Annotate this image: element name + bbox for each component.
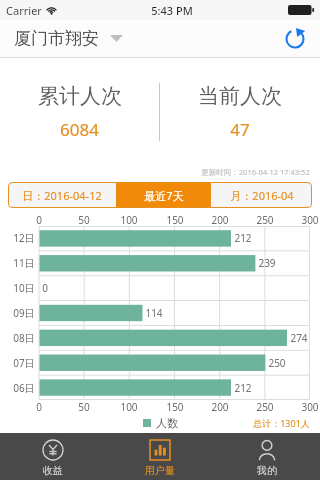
button[interactable]: 我的 (213, 433, 320, 480)
staticText: 47 (230, 118, 250, 141)
staticText: 09日 (13, 306, 35, 320)
staticText: 人数 (156, 416, 178, 430)
staticText: 150 (166, 400, 184, 413)
staticText: 总计：1301人 (253, 417, 310, 429)
button[interactable]: 最近7天 (117, 182, 210, 208)
staticText: 200 (211, 213, 229, 226)
staticText: 274 (290, 331, 308, 345)
staticText: 我的 (257, 464, 277, 477)
staticText: 收益 (43, 464, 63, 477)
button[interactable]: Refresh (280, 24, 310, 54)
staticText: 200 (211, 400, 229, 413)
staticText: 0 (42, 281, 48, 295)
staticText: 最近7天 (144, 188, 184, 203)
staticText: 6084 (60, 118, 99, 141)
staticText: 累计人次 (38, 83, 122, 109)
staticText: 06日 (13, 381, 35, 395)
staticText: 10日 (13, 281, 35, 295)
staticText: 07日 (13, 356, 35, 370)
staticText: 114 (145, 306, 163, 320)
staticText: 当前人次 (198, 83, 282, 109)
staticText: 用户量 (145, 464, 175, 477)
staticText: 250 (268, 356, 286, 370)
staticText: 50 (78, 213, 90, 226)
staticText: 100 (120, 213, 138, 226)
button[interactable]: 月：2016-04 (211, 182, 312, 208)
staticText: 11日 (13, 256, 35, 270)
staticText: 250 (256, 400, 274, 413)
staticText: 月：2016-04 (230, 188, 294, 203)
staticText: 5:43 PM (151, 3, 193, 18)
staticText: 更新时间：2016-04-12 17:43:52 (201, 167, 310, 177)
staticText: 厦门市翔安 (14, 28, 99, 49)
staticText: 日：2016-04-12 (22, 188, 102, 203)
staticText: 239 (258, 256, 276, 270)
staticText: 300 (301, 213, 319, 226)
staticText: 212 (234, 231, 252, 245)
button[interactable]: 日：2016-04-12 (8, 182, 116, 208)
button[interactable]: 用户量 (106, 433, 213, 480)
staticText: 0 (36, 400, 42, 413)
staticText: 250 (256, 213, 274, 226)
button[interactable]: 厦门市翔安 (12, 24, 125, 53)
staticText: 100 (120, 400, 138, 413)
staticText: 0 (36, 213, 42, 226)
staticText: 212 (234, 381, 252, 395)
staticText: 50 (78, 400, 90, 413)
staticText: Carrier (6, 3, 42, 18)
button[interactable]: 收益 (0, 433, 106, 480)
staticText: 300 (301, 400, 319, 413)
staticText: 08日 (13, 331, 35, 345)
staticText: 150 (166, 213, 184, 226)
staticText: 12日 (13, 231, 35, 245)
